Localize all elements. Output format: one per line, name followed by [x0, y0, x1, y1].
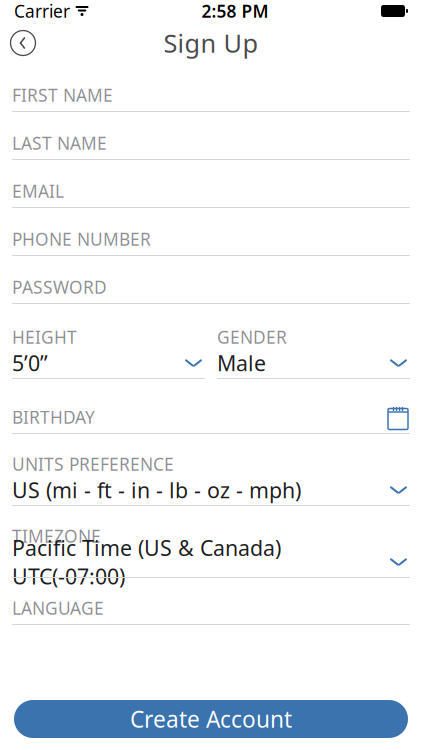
staticText: Carrier [14, 0, 70, 22]
staticText: Pacific Time (US & Canada) UTC(-07:00) [12, 534, 281, 590]
staticText: US (mi - ft - in - lb - oz - mph) [12, 476, 301, 504]
staticText: Sign Up [163, 26, 258, 60]
button[interactable]: PHONE NUMBER [12, 208, 410, 256]
staticText: UNITS PREFERENCE [12, 452, 174, 475]
button[interactable]: BIRTHDAY [12, 379, 410, 434]
staticText: LAST NAME [12, 131, 107, 154]
button[interactable]: Create Account [14, 700, 408, 738]
button[interactable]: PASSWORD [12, 256, 410, 304]
staticText: Male [217, 349, 266, 377]
staticText: GENDER [217, 325, 287, 348]
staticText: BIRTHDAY [12, 405, 95, 428]
button[interactable]: Back [6, 26, 40, 60]
button[interactable]: UNITS PREFERENCE [12, 434, 410, 506]
button[interactable]: HEIGHT [12, 304, 205, 379]
button[interactable]: FIRST NAME [12, 64, 410, 112]
staticText: 2:58 PM [201, 0, 268, 22]
staticText: FIRST NAME [12, 83, 113, 106]
button[interactable]: LAST NAME [12, 112, 410, 160]
staticText: Create Account [130, 704, 292, 734]
button[interactable]: TIMEZONE [12, 506, 410, 578]
button[interactable]: LANGUAGE [12, 578, 410, 625]
button[interactable]: GENDER [217, 304, 410, 379]
staticText: 5’0” [12, 349, 48, 377]
staticText: PHONE NUMBER [12, 227, 151, 250]
staticText: PASSWORD [12, 275, 107, 298]
staticText: LANGUAGE [12, 596, 104, 619]
staticText: EMAIL [12, 179, 64, 202]
staticText: HEIGHT [12, 325, 77, 348]
staticText: TIMEZONE [12, 524, 101, 547]
button[interactable]: EMAIL [12, 160, 410, 208]
